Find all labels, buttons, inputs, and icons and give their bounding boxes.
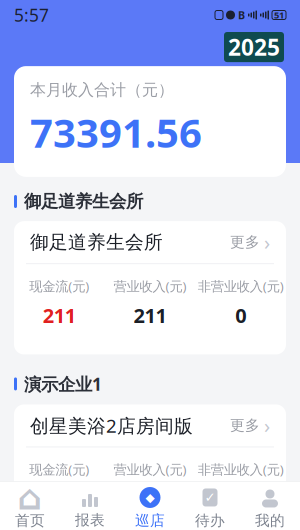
button[interactable]: 创星美浴2店房间版 (14, 404, 286, 446)
staticText: 御足道养生会所 (24, 191, 143, 212)
staticText: 御足道养生会所 (30, 231, 163, 254)
staticText: 我的 (255, 511, 285, 529)
staticText: ◆ (145, 491, 154, 504)
staticText: 演示企业1 (24, 372, 102, 395)
button[interactable]: 御足道养生会所 (14, 221, 286, 263)
staticText: 创星美浴2店房间版 (30, 413, 193, 438)
staticText: B (238, 8, 245, 22)
staticText: 5:57 (14, 3, 49, 26)
staticText: ✓ (204, 490, 215, 505)
staticText: 本月收入合计（元） (30, 80, 174, 100)
staticText: 73391.56 (30, 106, 202, 159)
staticText: 首页 (15, 511, 45, 529)
staticText: 待办 (195, 511, 225, 529)
button[interactable]: 报表 (60, 482, 120, 530)
staticText: 211 (43, 302, 76, 328)
staticText: 现金流(元) (29, 460, 89, 478)
staticText: › (264, 412, 270, 439)
staticText: 0 (235, 302, 246, 328)
staticText: ⌂ (17, 478, 42, 517)
staticText: 营业收入(元) (113, 460, 186, 478)
staticText: 现金流(元) (29, 277, 89, 295)
staticText: 报表 (75, 511, 105, 529)
staticText: 0 (144, 485, 155, 512)
staticText: 巡店 (135, 511, 165, 529)
staticText: 非营业收入(元) (198, 460, 284, 478)
staticText: 51 (274, 9, 284, 21)
button[interactable]: ◆ (120, 481, 180, 530)
button[interactable]: ⌂ (0, 481, 60, 530)
staticText: 非营业收入(元) (198, 277, 284, 295)
button[interactable]: 我的 (240, 481, 300, 530)
staticText: 2025 (228, 32, 280, 62)
staticText: 更多 (230, 233, 260, 251)
staticText: 更多 (230, 416, 260, 434)
staticText: 211 (133, 302, 166, 328)
button[interactable]: ✓ (180, 481, 240, 530)
staticText: › (264, 229, 270, 255)
staticText: 营业收入(元) (113, 277, 186, 295)
